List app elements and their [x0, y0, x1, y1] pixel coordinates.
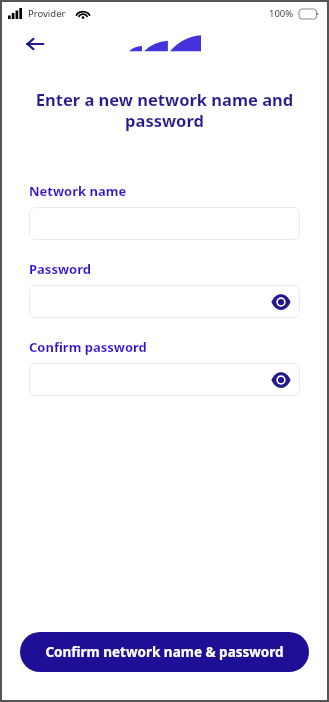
- button[interactable]: Back: [22, 31, 48, 57]
- button[interactable]: Show confirm password: [29, 363, 300, 396]
- staticText: Password: [29, 260, 91, 278]
- staticText: Enter a new network name and password: [30, 88, 299, 132]
- button[interactable]: Confirm network name & password: [20, 632, 309, 672]
- button[interactable]: Show password: [270, 291, 292, 313]
- staticText: Network name: [29, 182, 127, 200]
- button[interactable]: [29, 207, 300, 240]
- staticText: 100%: [269, 7, 294, 20]
- other: Logo: [129, 34, 201, 54]
- staticText: Confirm password: [29, 338, 147, 356]
- button[interactable]: Show password: [29, 285, 300, 318]
- staticText: Confirm network name & password: [45, 643, 284, 661]
- staticText: Provider: [28, 7, 66, 20]
- button[interactable]: Show confirm password: [270, 369, 292, 391]
